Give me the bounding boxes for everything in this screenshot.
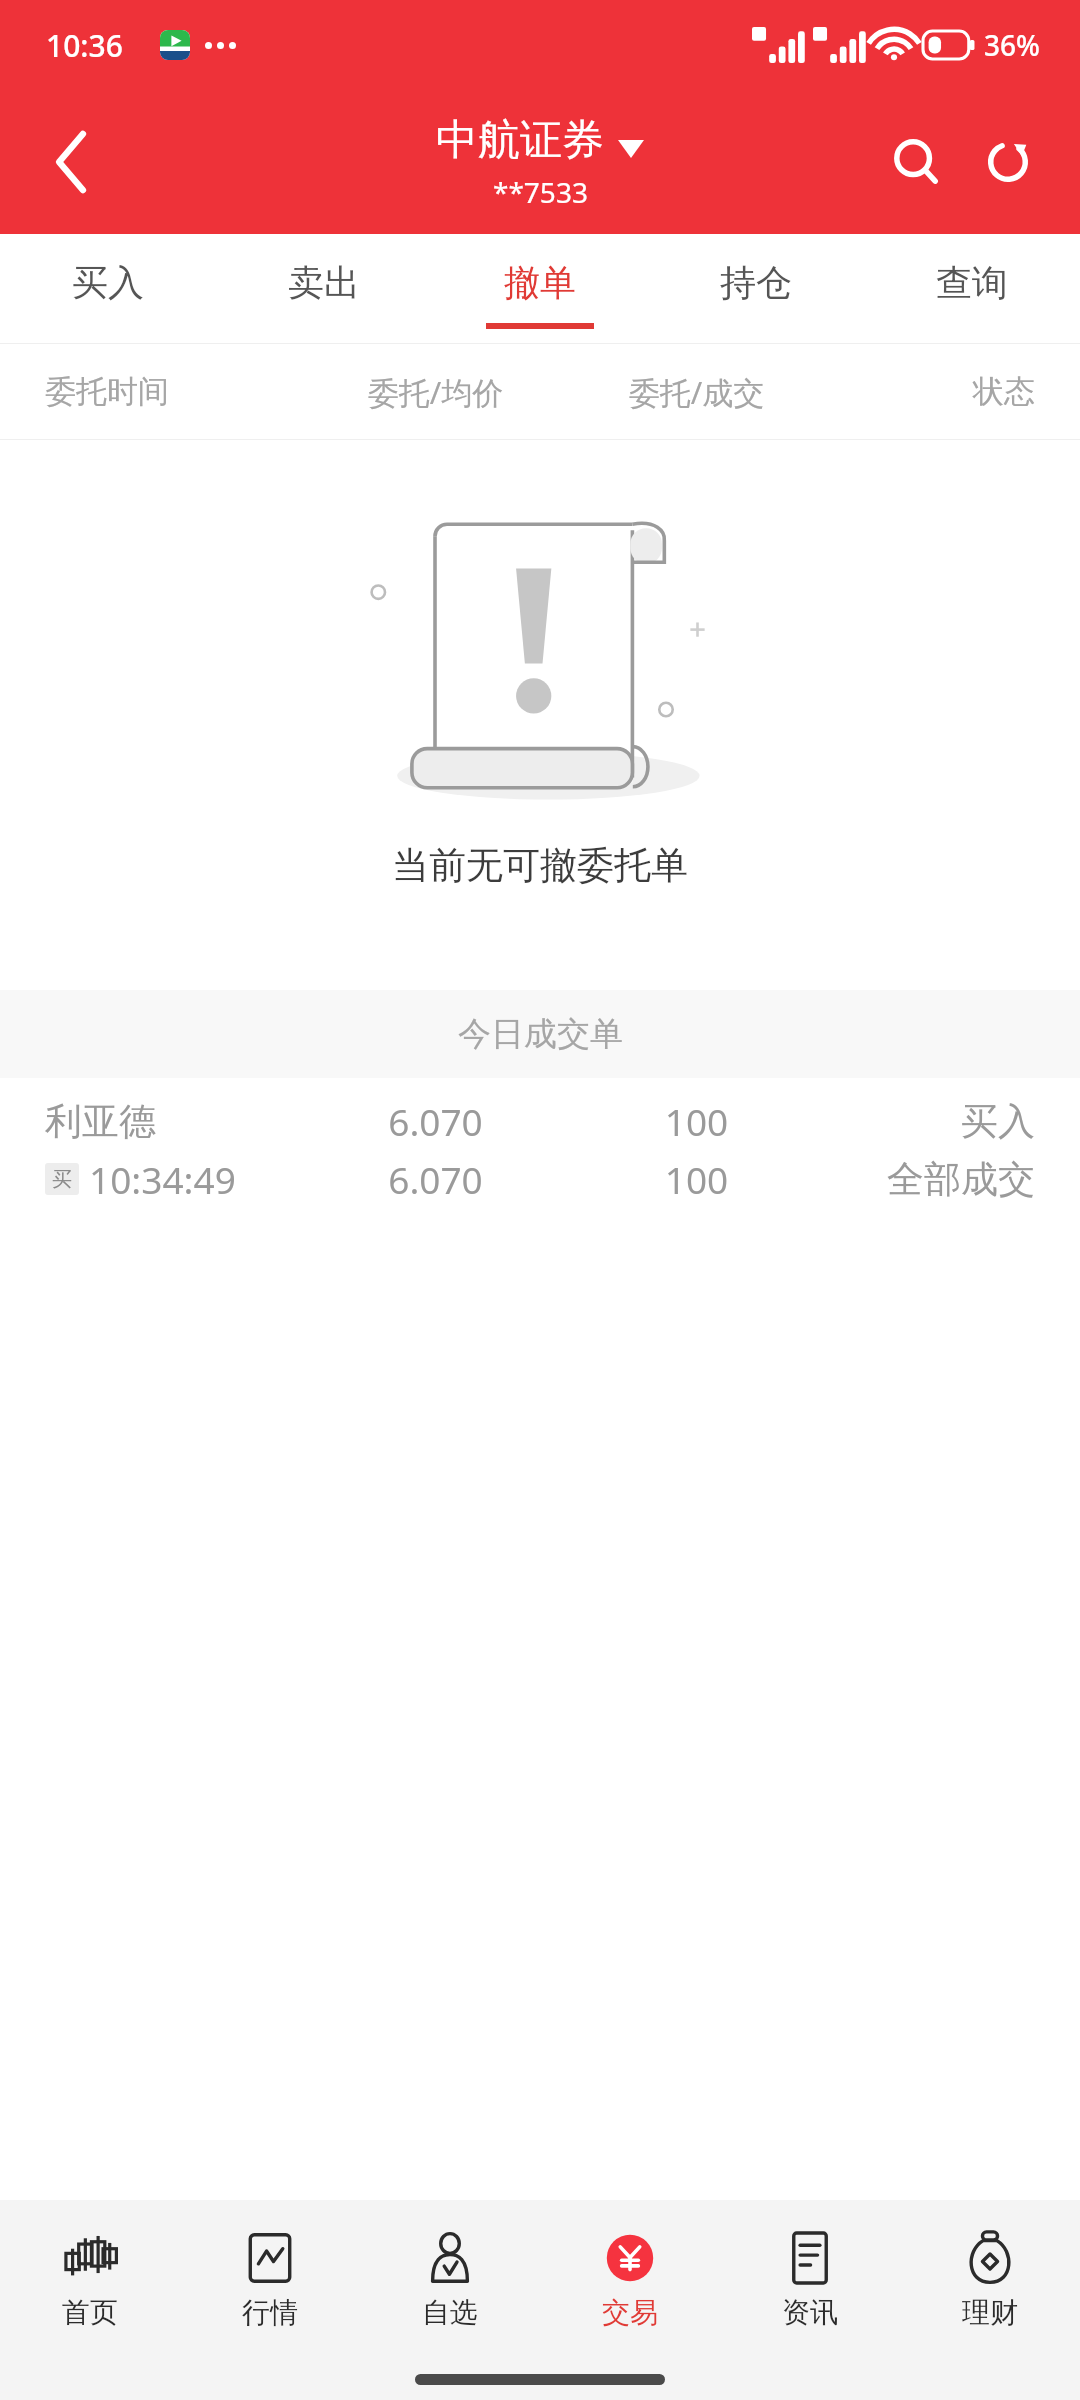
staticText: 资讯 xyxy=(782,2295,838,2330)
button[interactable]: Back xyxy=(22,112,122,212)
button[interactable]: 资讯 xyxy=(720,2200,900,2358)
staticText: 6.070 xyxy=(305,1154,566,1204)
button[interactable]: 行情 xyxy=(180,2200,360,2358)
staticText: 交易 xyxy=(602,2295,658,2330)
staticText: 委托/成交 xyxy=(566,371,827,413)
staticText: 100 xyxy=(566,1154,827,1204)
staticText: 首页 xyxy=(62,2295,118,2330)
button[interactable]: 首页 xyxy=(0,2200,180,2358)
staticText: 买 xyxy=(52,1167,72,1192)
staticText: 10:34:49 xyxy=(89,1154,236,1204)
button[interactable]: 卖出 xyxy=(216,234,432,344)
button[interactable]: Search xyxy=(870,116,962,208)
button[interactable]: 撤单 xyxy=(432,234,648,344)
button[interactable]: 理财 xyxy=(900,2200,1080,2358)
button[interactable]: Refresh xyxy=(962,116,1054,208)
staticText: 理财 xyxy=(962,2295,1018,2330)
staticText: 全部成交 xyxy=(827,1156,1035,1203)
staticText: 买入 xyxy=(72,260,144,305)
button[interactable]: 自选 xyxy=(360,2200,540,2358)
staticText: 行情 xyxy=(242,2295,298,2330)
staticText: 10:36 xyxy=(46,25,123,66)
staticText: 查询 xyxy=(936,260,1008,305)
button[interactable]: 查询 xyxy=(864,234,1080,344)
staticText: 自选 xyxy=(422,2295,478,2330)
staticText: 36% xyxy=(984,26,1040,64)
staticText: 委托时间 xyxy=(45,372,305,411)
staticText: 6.070 xyxy=(305,1096,566,1146)
button[interactable]: 持仓 xyxy=(648,234,864,344)
staticText: **7533 xyxy=(493,173,588,211)
staticText: 委托/均价 xyxy=(305,371,566,413)
button[interactable]: 中航证券 xyxy=(436,114,644,211)
staticText: 撤单 xyxy=(504,260,576,305)
staticText: 今日成交单 xyxy=(458,1013,623,1055)
staticText: 当前无可撤委托单 xyxy=(392,842,688,889)
staticText: 100 xyxy=(566,1096,827,1146)
button[interactable]: 利亚德 xyxy=(0,1078,1080,1222)
staticText: 利亚德 xyxy=(45,1098,305,1145)
staticText: 买入 xyxy=(827,1098,1035,1145)
staticText: 状态 xyxy=(827,372,1035,411)
staticText: 持仓 xyxy=(720,260,792,305)
button[interactable]: 买入 xyxy=(0,234,216,344)
staticText: 中航证券 xyxy=(436,114,604,167)
staticText: 卖出 xyxy=(288,260,360,305)
button[interactable]: 交易 xyxy=(540,2200,720,2358)
